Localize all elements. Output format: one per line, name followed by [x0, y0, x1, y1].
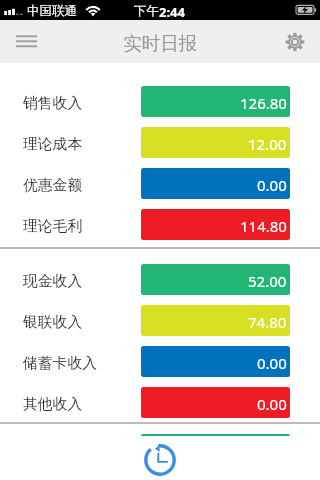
- staticText: 74.80: [248, 312, 287, 332]
- staticText: 现金收入: [23, 272, 83, 291]
- staticText: 银联收入: [23, 313, 83, 332]
- staticText: 114.80: [240, 216, 287, 236]
- staticText: 0.00: [257, 353, 287, 373]
- button[interactable]: 银联收入: [0, 300, 320, 341]
- staticText: 优惠金额: [23, 176, 83, 195]
- button[interactable]: Menu: [0, 20, 50, 63]
- button[interactable]: 理论毛利: [0, 204, 320, 245]
- staticText: 实时日报: [123, 32, 198, 55]
- staticText: 销售收入: [23, 94, 83, 113]
- staticText: 中国联通: [27, 3, 77, 19]
- button[interactable]: 现金收入: [0, 259, 320, 300]
- staticText: 0.00: [257, 394, 287, 414]
- staticText: 下午: [134, 3, 159, 19]
- staticText: 其他收入: [23, 395, 83, 414]
- button[interactable]: Settings: [272, 20, 320, 63]
- button[interactable]: 理论成本: [0, 122, 320, 163]
- button[interactable]: 储蓄卡收入: [0, 341, 320, 382]
- staticText: 储蓄卡收入: [23, 354, 97, 373]
- button[interactable]: History: [142, 442, 178, 478]
- button[interactable]: 优惠金额: [0, 163, 320, 204]
- staticText: 52.00: [248, 271, 287, 291]
- staticText: 理论成本: [23, 135, 83, 154]
- staticText: 0.00: [257, 175, 287, 195]
- staticText: 2:44: [159, 3, 185, 21]
- staticText: 理论毛利: [23, 217, 83, 236]
- staticText: 126.80: [240, 93, 287, 113]
- staticText: 12.00: [248, 134, 287, 154]
- button[interactable]: 其他收入: [0, 382, 320, 423]
- button[interactable]: 销售收入: [0, 81, 320, 122]
